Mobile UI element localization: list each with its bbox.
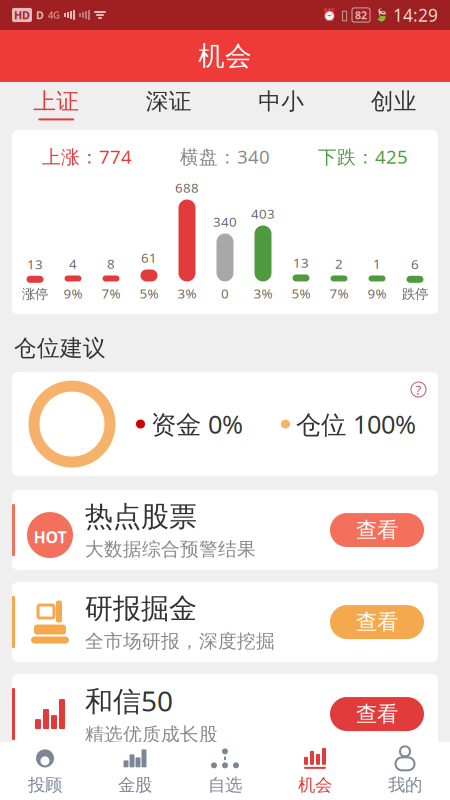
staticText: ▲ bbox=[39, 506, 60, 536]
staticText: 自选 bbox=[208, 774, 242, 796]
staticText: HOT bbox=[33, 526, 66, 548]
staticText: 我的 bbox=[388, 774, 422, 796]
staticText: 上证 bbox=[33, 88, 79, 115]
staticText: 横盘：340 bbox=[180, 144, 270, 169]
staticText: 7% bbox=[329, 284, 348, 302]
staticText: 全市场研报，深度挖掘 bbox=[85, 630, 275, 653]
button[interactable]: 深证 bbox=[112, 82, 225, 126]
staticText: 8 bbox=[107, 255, 115, 272]
staticText: 5% bbox=[291, 284, 310, 302]
staticText: 金股 bbox=[118, 774, 152, 796]
staticText: 82 bbox=[355, 8, 367, 22]
staticText: 下跌：425 bbox=[318, 144, 408, 169]
staticText: 创业 bbox=[371, 88, 417, 115]
staticText: 投顾 bbox=[28, 774, 62, 796]
staticText: 查看 bbox=[356, 517, 398, 543]
staticText: 0 bbox=[221, 284, 229, 302]
staticText: 3% bbox=[177, 284, 196, 302]
button[interactable]: 创业 bbox=[337, 82, 450, 126]
staticText: 5% bbox=[139, 284, 158, 302]
staticText: 403 bbox=[251, 205, 275, 222]
staticText: 61 bbox=[141, 249, 157, 266]
staticText: 资金 0% bbox=[151, 407, 243, 441]
button[interactable]: ▲ bbox=[0, 490, 450, 570]
staticText: 688 bbox=[175, 179, 199, 196]
staticText: 6 bbox=[411, 255, 419, 273]
staticText: 13 bbox=[293, 254, 309, 271]
staticText: 查看 bbox=[356, 609, 398, 635]
staticText: 和信50 bbox=[85, 682, 173, 719]
staticText: 9% bbox=[367, 284, 386, 302]
button[interactable]: 我的 bbox=[360, 742, 450, 800]
button[interactable]: 和信50 bbox=[0, 674, 450, 754]
button[interactable]: 帮助 bbox=[411, 382, 426, 397]
staticText: HD bbox=[14, 8, 30, 22]
staticText: 中小 bbox=[258, 88, 304, 115]
staticText: 机会 bbox=[298, 774, 332, 796]
staticText: ▯ bbox=[341, 7, 348, 22]
button[interactable]: 金股 bbox=[90, 742, 180, 800]
button[interactable]: 投顾 bbox=[0, 742, 90, 800]
staticText: 查看 bbox=[356, 701, 398, 727]
button[interactable]: 机会 bbox=[270, 742, 360, 800]
button[interactable]: 研报掘金 bbox=[0, 582, 450, 662]
staticText: 1 bbox=[373, 255, 381, 272]
staticText: 涨停 bbox=[22, 286, 48, 302]
staticText: 热点股票 bbox=[85, 499, 197, 534]
button[interactable]: 上证 bbox=[0, 82, 112, 126]
button[interactable]: 中小 bbox=[225, 82, 337, 126]
staticText: 大数据综合预警结果 bbox=[85, 538, 256, 561]
staticText: 🍃 bbox=[374, 8, 389, 22]
staticText: 9% bbox=[63, 284, 82, 302]
staticText: 上涨：774 bbox=[42, 144, 132, 169]
button[interactable]: 自选 bbox=[180, 742, 270, 800]
staticText: 14:29 bbox=[393, 3, 438, 26]
staticText: 仓位建议 bbox=[14, 334, 106, 362]
staticText: 2 bbox=[335, 255, 343, 272]
staticText: 3% bbox=[253, 284, 272, 302]
staticText: 深证 bbox=[146, 88, 192, 115]
staticText: 7% bbox=[101, 284, 120, 302]
staticText: 340 bbox=[213, 213, 237, 230]
staticText: ? bbox=[415, 381, 421, 398]
staticText: 跌停 bbox=[402, 286, 428, 302]
staticText: 13 bbox=[27, 255, 43, 273]
staticText: 研报掘金 bbox=[85, 591, 197, 626]
staticText: D bbox=[36, 8, 44, 22]
staticText: 精选优质成长股 bbox=[85, 723, 218, 746]
staticText: ⏰ bbox=[322, 8, 337, 22]
staticText: 仓位 100% bbox=[296, 407, 416, 441]
staticText: 4G bbox=[48, 9, 60, 21]
staticText: 4 bbox=[69, 255, 77, 272]
staticText: 机会 bbox=[198, 40, 252, 72]
